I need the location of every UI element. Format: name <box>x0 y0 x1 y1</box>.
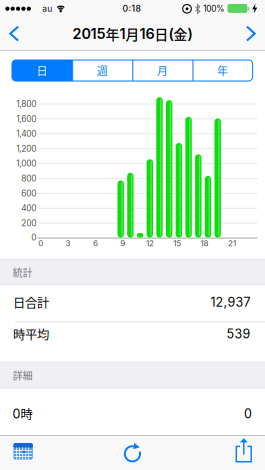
staticText: 0 <box>31 232 36 243</box>
staticText: 18 <box>201 238 209 248</box>
staticText: 日 <box>37 63 48 78</box>
staticText: 1,400 <box>16 129 36 139</box>
button[interactable]: Next day <box>0 0 265 51</box>
staticText: 1,800 <box>16 99 36 109</box>
staticText: 9 <box>120 238 125 248</box>
staticText: 0 <box>38 238 43 248</box>
button[interactable]: 年 <box>0 0 265 90</box>
button[interactable]: Refresh <box>0 0 265 470</box>
button[interactable]: 月 <box>0 0 265 90</box>
button[interactable]: Calendar <box>0 0 265 470</box>
staticText: 0:18 <box>122 3 140 14</box>
button[interactable]: 日 <box>0 0 265 90</box>
button[interactable]: 週 <box>0 0 265 90</box>
staticText: 12 <box>146 238 154 248</box>
staticText: 100% <box>203 3 224 14</box>
staticText: 200 <box>21 218 36 228</box>
staticText: 0 <box>244 406 252 421</box>
staticText: 539 <box>226 326 250 342</box>
staticText: 週 <box>97 63 108 78</box>
staticText: 詳細 <box>13 368 33 382</box>
staticText: 600 <box>21 188 36 198</box>
staticText: 400 <box>21 203 36 213</box>
staticText: 時平均 <box>13 325 49 343</box>
staticText: 3 <box>66 238 71 248</box>
staticText: 1,000 <box>16 158 36 169</box>
staticText: 月 <box>157 63 168 78</box>
staticText: 15 <box>173 238 181 248</box>
staticText: 2015年1月16日(金) <box>72 24 192 43</box>
staticText: 1,600 <box>16 114 36 124</box>
staticText: au <box>42 3 52 14</box>
staticText: 1,200 <box>16 144 36 154</box>
button[interactable]: Previous day <box>0 0 265 51</box>
staticText: 800 <box>21 173 36 184</box>
staticText: 0時 <box>13 405 33 422</box>
staticText: 日合計 <box>13 293 49 311</box>
button[interactable]: Share <box>0 0 265 470</box>
staticText: 統計 <box>13 265 33 279</box>
staticText: 年 <box>217 63 228 78</box>
staticText: 6 <box>93 238 98 248</box>
staticText: 21 <box>228 238 236 248</box>
staticText: 12,937 <box>210 295 250 310</box>
